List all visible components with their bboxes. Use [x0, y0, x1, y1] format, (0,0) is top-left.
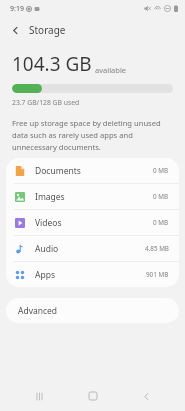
staticText: 901 MB: [146, 270, 169, 279]
staticText: 104.3 GB: [12, 51, 92, 77]
staticText: Storage: [29, 23, 66, 37]
button[interactable]: Audio: [6, 236, 179, 261]
staticText: Free up storage space by deleting unused…: [12, 118, 173, 152]
staticText: 9:19: [10, 4, 24, 14]
staticText: Videos: [35, 217, 153, 229]
button[interactable]: Recent apps: [24, 381, 54, 411]
staticText: available: [95, 65, 127, 75]
button[interactable]: Videos: [6, 210, 179, 235]
staticText: 0 MB: [153, 218, 169, 227]
staticText: Audio: [35, 243, 145, 255]
staticText: Advanced: [18, 305, 58, 317]
button[interactable]: Apps: [6, 262, 179, 287]
staticText: 0 MB: [153, 192, 169, 201]
staticText: 4.85 MB: [145, 244, 169, 253]
staticText: Images: [35, 191, 153, 203]
staticText: Documents: [35, 165, 153, 177]
button[interactable]: Home: [78, 381, 108, 411]
button[interactable]: Images: [6, 184, 179, 209]
button[interactable]: Advanced: [6, 298, 179, 323]
button[interactable]: Back: [131, 381, 161, 411]
staticText: Apps: [35, 269, 146, 281]
button[interactable]: Documents: [6, 158, 179, 183]
staticText: 0 MB: [153, 166, 169, 175]
button[interactable]: Back: [5, 20, 25, 40]
staticText: 23.7 GB/128 GB used: [12, 98, 80, 107]
